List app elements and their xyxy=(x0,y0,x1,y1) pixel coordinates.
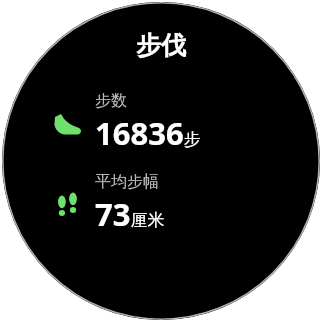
staticText: 步数 xyxy=(95,91,127,111)
staticText: 步伐 xyxy=(136,30,186,61)
other: Average stride xyxy=(52,189,82,219)
staticText: 16836步 xyxy=(95,112,201,154)
button[interactable]: Average stride xyxy=(41,172,281,235)
other: Steps xyxy=(52,108,82,138)
staticText: 73厘米 xyxy=(95,193,165,235)
button[interactable]: Steps xyxy=(41,91,281,154)
staticText: 平均步幅 xyxy=(95,172,159,192)
button[interactable]: 步伐 xyxy=(128,28,194,63)
